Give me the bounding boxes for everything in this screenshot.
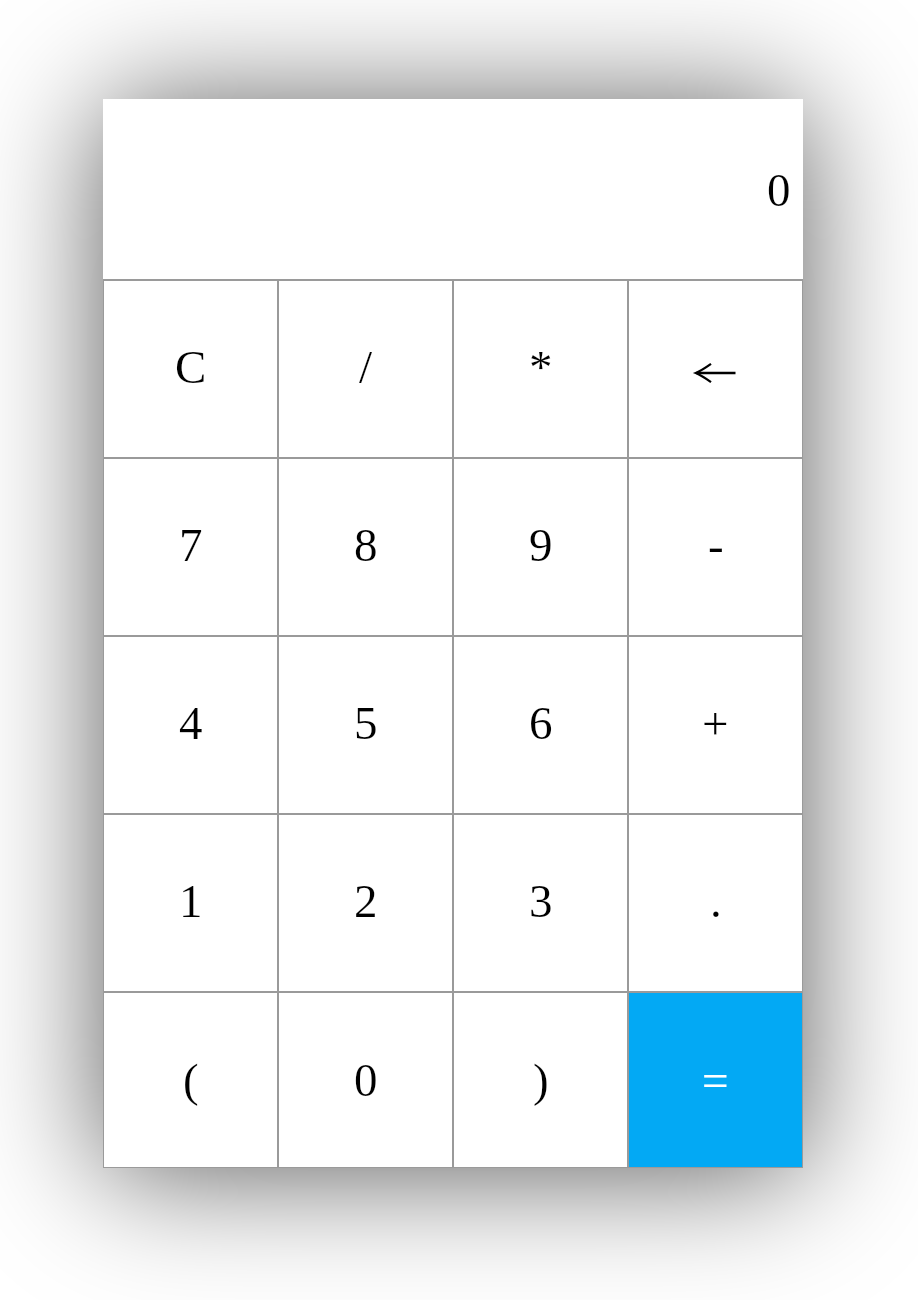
button[interactable]: 6 bbox=[453, 636, 628, 814]
button[interactable]: - bbox=[628, 458, 803, 636]
staticText: . bbox=[710, 875, 722, 927]
button[interactable]: . bbox=[628, 814, 803, 992]
button[interactable]: 8 bbox=[278, 458, 453, 636]
staticText: 8 bbox=[354, 519, 378, 571]
staticText: 0 bbox=[354, 1054, 378, 1106]
staticText: - bbox=[708, 519, 724, 571]
button[interactable]: ( bbox=[103, 992, 278, 1168]
button[interactable]: / bbox=[278, 280, 453, 458]
staticText: 5 bbox=[354, 697, 378, 749]
staticText: * bbox=[529, 341, 553, 393]
staticText: 4 bbox=[179, 697, 203, 749]
button[interactable]: ) bbox=[453, 992, 628, 1168]
staticText: 0 bbox=[767, 164, 791, 216]
button[interactable]: 1 bbox=[103, 814, 278, 992]
button[interactable]: 9 bbox=[453, 458, 628, 636]
button[interactable]: 3 bbox=[453, 814, 628, 992]
staticText: ( bbox=[183, 1054, 199, 1106]
button[interactable]: * bbox=[453, 280, 628, 458]
staticText: 7 bbox=[179, 519, 203, 571]
staticText: 3 bbox=[529, 875, 553, 927]
button[interactable]: 7 bbox=[103, 458, 278, 636]
button[interactable]: 0 bbox=[278, 992, 453, 1168]
button[interactable]: + bbox=[628, 636, 803, 814]
button[interactable] bbox=[628, 280, 803, 458]
staticText: 6 bbox=[529, 697, 553, 749]
button[interactable]: 2 bbox=[278, 814, 453, 992]
staticText: + bbox=[702, 697, 729, 749]
staticText: 2 bbox=[354, 875, 378, 927]
button[interactable]: = bbox=[628, 992, 803, 1168]
staticText: 9 bbox=[529, 519, 553, 571]
staticText: ) bbox=[533, 1054, 549, 1106]
staticText: 1 bbox=[179, 875, 203, 927]
staticText: / bbox=[359, 341, 373, 393]
staticText: = bbox=[702, 1054, 729, 1106]
staticText: C bbox=[175, 341, 207, 393]
button[interactable]: 5 bbox=[278, 636, 453, 814]
button[interactable]: C bbox=[103, 280, 278, 458]
button[interactable]: 4 bbox=[103, 636, 278, 814]
